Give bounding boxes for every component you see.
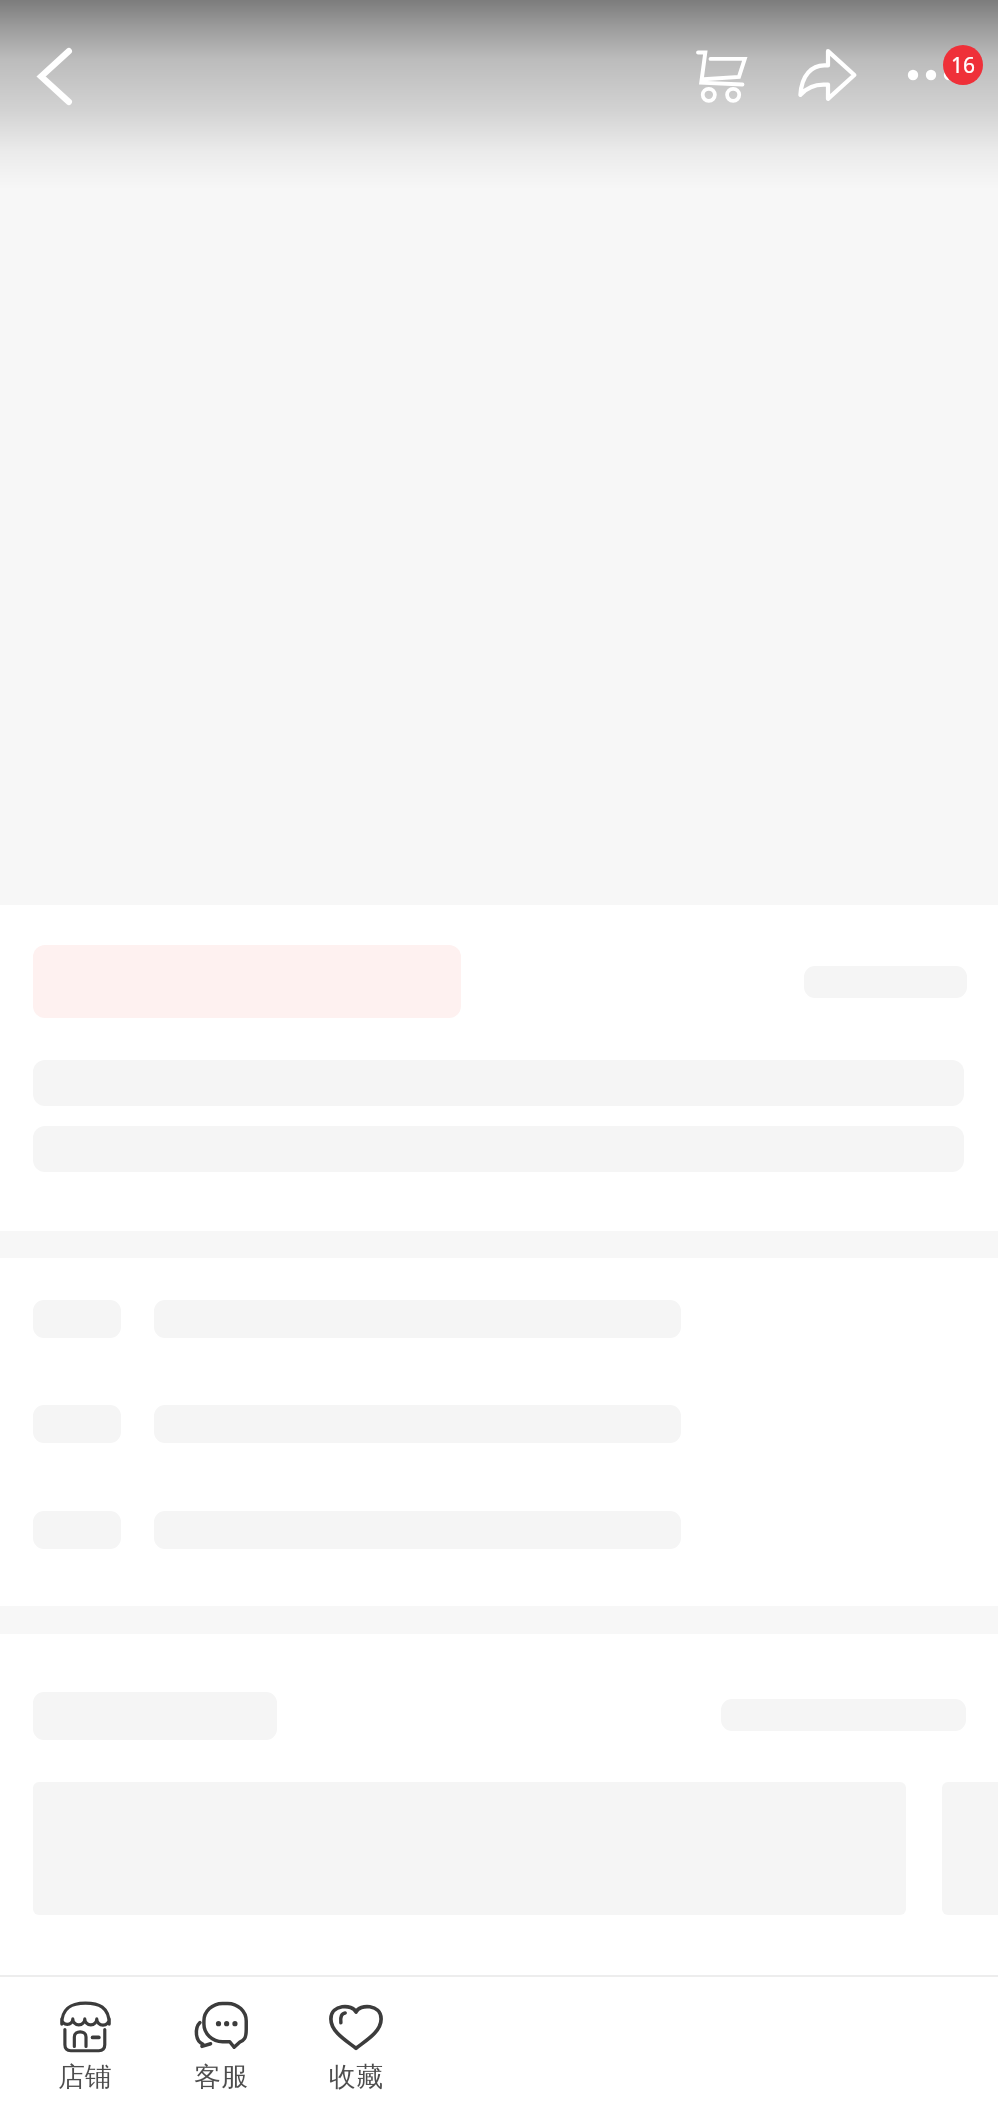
staticText: 收藏: [329, 2060, 383, 2094]
button[interactable]: 收藏: [298, 1977, 414, 2113]
button[interactable]: Shopping cart: [679, 32, 767, 120]
staticText: 店铺: [58, 2060, 112, 2094]
staticText: 16: [951, 51, 976, 80]
button[interactable]: Back: [11, 32, 99, 120]
button[interactable]: 客服: [163, 1977, 279, 2113]
button[interactable]: 店铺: [27, 1977, 143, 2113]
button[interactable]: Share: [784, 31, 872, 119]
button[interactable]: More options: [880, 31, 990, 119]
staticText: 客服: [194, 2060, 248, 2094]
